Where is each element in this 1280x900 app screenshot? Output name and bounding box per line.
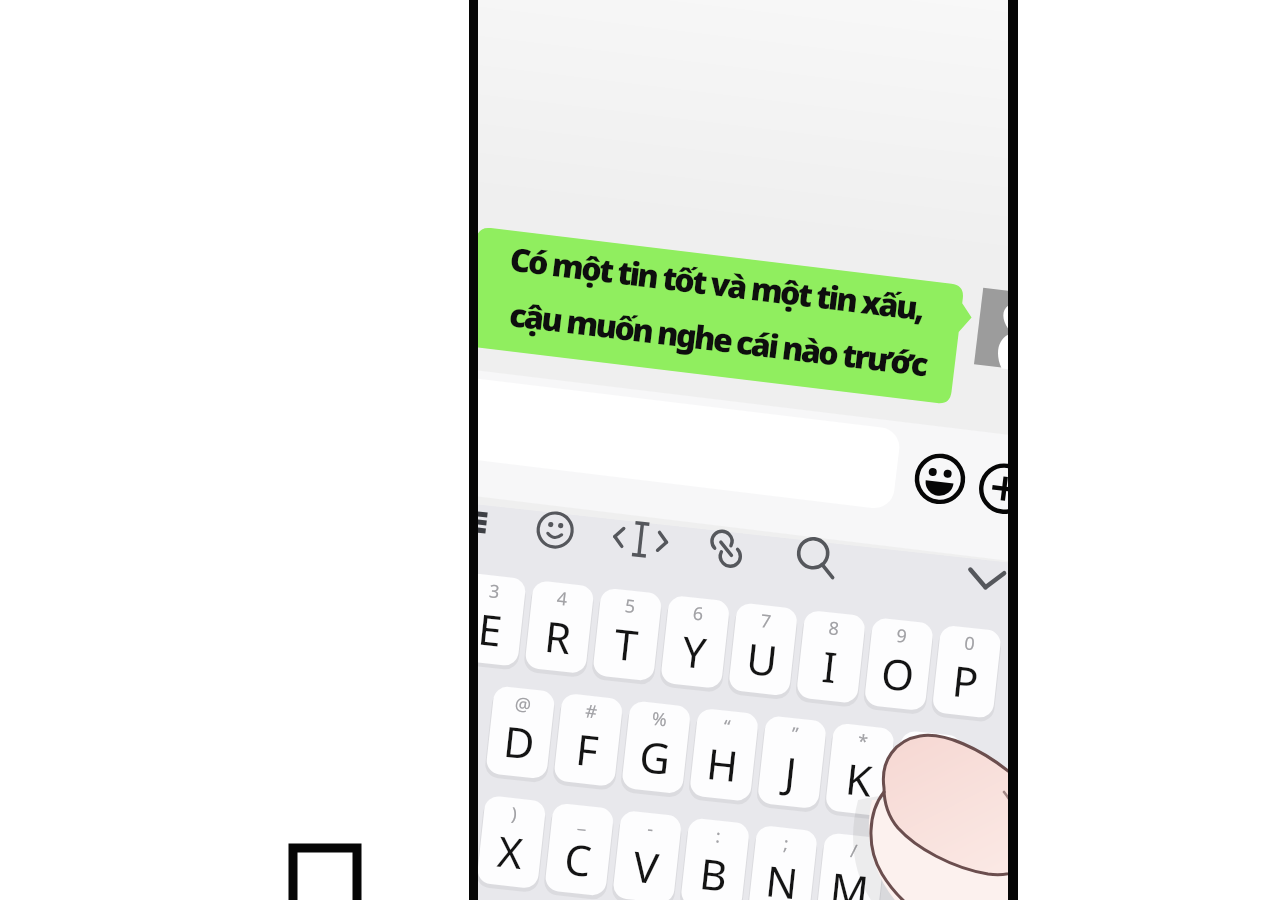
button[interactable]: Keyboard menu: [468, 504, 494, 542]
button[interactable]: Key G: [638, 696, 699, 784]
button[interactable]: Hide keyboard: [962, 556, 1014, 604]
button[interactable]: Insert link: [702, 526, 754, 578]
button[interactable]: Text editing: [616, 514, 670, 566]
button[interactable]: Key B: [690, 813, 751, 900]
button[interactable]: Key N: [759, 821, 820, 900]
button[interactable]: Key C: [554, 798, 615, 886]
button[interactable]: Emoji: [917, 452, 971, 506]
button[interactable]: Key O: [875, 618, 936, 706]
button[interactable]: Key U: [739, 603, 800, 691]
button[interactable]: Search: [788, 536, 840, 588]
button[interactable]: Contact avatar: [974, 283, 1010, 369]
button[interactable]: Key Y: [670, 595, 731, 683]
button[interactable]: Insert emoji: [531, 505, 583, 557]
button[interactable]: Key R: [534, 580, 595, 668]
button[interactable]: Key J: [775, 711, 836, 799]
button[interactable]: Add attachment: [982, 460, 1036, 514]
button[interactable]: Message input field: [478, 404, 898, 514]
button[interactable]: Key V: [622, 806, 683, 894]
button[interactable]: Message: Có một tin tốt và một tin xấu, …: [478, 225, 972, 405]
button[interactable]: Key H: [706, 703, 767, 791]
button[interactable]: Key F: [570, 688, 631, 776]
button[interactable]: Key T: [602, 588, 663, 676]
button[interactable]: Key P: [944, 625, 1005, 713]
button[interactable]: Key E: [466, 573, 527, 661]
button[interactable]: Key M: [827, 828, 888, 900]
button[interactable]: Key X: [486, 791, 547, 879]
button[interactable]: Key L: [911, 726, 972, 814]
button[interactable]: Key K: [843, 718, 904, 806]
button[interactable]: Key I: [807, 610, 868, 698]
button[interactable]: Key D: [502, 681, 563, 769]
